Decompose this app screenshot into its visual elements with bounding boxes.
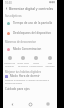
button[interactable]: Home: [21, 100, 39, 108]
staticText: Desbloqueos del dispositivo: [13, 31, 51, 35]
staticText: Mas opciones: [45, 62, 55, 68]
staticText: Cuidado para ojos: [5, 87, 30, 91]
staticText: Modo Concentracion: [29, 62, 43, 68]
staticText: Tiempo de uso de la pantalla: [13, 21, 53, 25]
staticText: Tiempo de enfoque: [4, 62, 15, 68]
staticText: Modo Hora de dormir: [10, 74, 40, 78]
staticText: Silencie el telefono y cambie la pantall…: [5, 79, 55, 85]
staticText: Maneras de desconectar: [5, 40, 36, 44]
button[interactable]: Modo Hora de dormir: [16, 54, 29, 68]
button[interactable]: Modo Concentracion: [3, 44, 57, 54]
button[interactable]: Desbloqueos del dispositivo: [3, 28, 57, 38]
staticText: Modo Hora de dormir: [17, 62, 29, 68]
button[interactable]: Back: [3, 100, 21, 108]
staticText: Mejorar tus habitos digitales: [5, 70, 42, 74]
button[interactable]: Tiempo de uso de la pantalla: [3, 18, 57, 28]
staticText: 10:30: [5, 1, 12, 5]
button[interactable]: Modo Concentracion: [29, 54, 43, 68]
staticText: Bienestar digital y controles: [9, 6, 54, 11]
staticText: Sus objetivos: [5, 14, 22, 18]
staticText: Modo Concentracion: [13, 47, 42, 51]
staticText: ●●▮: [49, 1, 55, 4]
button[interactable]: Recents: [39, 100, 57, 108]
button[interactable]: Tiempo de enfoque: [3, 54, 16, 68]
button[interactable]: Mas opciones: [43, 54, 57, 68]
button[interactable]: Back: [3, 5, 9, 11]
